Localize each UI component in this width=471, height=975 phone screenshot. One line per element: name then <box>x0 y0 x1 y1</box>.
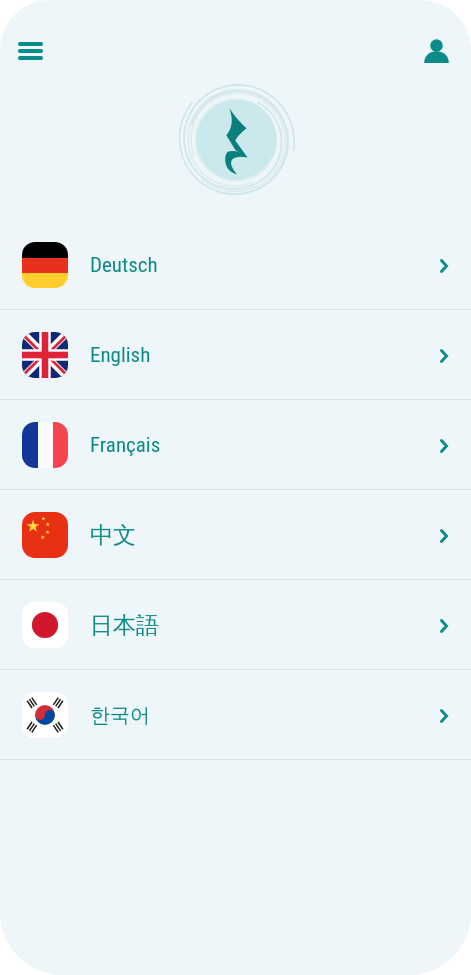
button[interactable]: Menu <box>5 26 55 76</box>
button[interactable]: 한국어 <box>0 670 471 759</box>
staticText: 中文 <box>90 521 136 550</box>
button[interactable]: English <box>0 310 471 399</box>
button[interactable]: Français <box>0 400 471 489</box>
button[interactable]: 日本語 <box>0 580 471 669</box>
button[interactable]: Profile <box>411 26 461 76</box>
staticText: Deutsch <box>90 253 158 278</box>
staticText: 한국어 <box>90 703 150 728</box>
button[interactable]: 中文 <box>0 490 471 579</box>
staticText: 日本語 <box>90 611 159 640</box>
staticText: English <box>90 343 151 368</box>
staticText: Français <box>90 433 161 458</box>
button[interactable]: Deutsch <box>0 220 471 309</box>
